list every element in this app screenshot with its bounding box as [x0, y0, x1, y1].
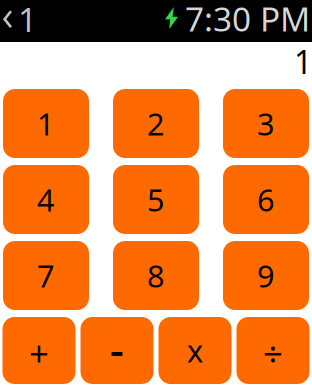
button[interactable]: 7 — [3, 241, 89, 310]
button[interactable]: 6 — [223, 165, 309, 234]
button[interactable]: 8 — [113, 241, 199, 310]
button[interactable]: Minus — [80, 317, 153, 384]
staticText: 9 — [257, 255, 275, 296]
staticText: 1 — [18, 0, 37, 41]
button[interactable]: 3 — [223, 89, 309, 158]
button[interactable]: 2 — [113, 89, 199, 158]
staticText: 1 — [294, 40, 312, 83]
staticText: 5 — [147, 179, 165, 220]
staticText: 3 — [257, 103, 275, 144]
staticText: 7 — [37, 255, 55, 296]
staticText: 1 — [37, 103, 55, 144]
button[interactable]: Multiply — [158, 317, 231, 384]
button[interactable]: 4 — [3, 165, 89, 234]
button[interactable]: Divide — [236, 317, 309, 384]
button[interactable]: 9 — [223, 241, 309, 310]
staticText: + — [29, 330, 49, 376]
button[interactable]: 5 — [113, 165, 199, 234]
staticText: 6 — [257, 179, 275, 220]
staticText: x — [187, 330, 203, 371]
button[interactable]: Back — [0, 0, 47, 42]
staticText: 4 — [37, 179, 55, 220]
staticText: 2 — [147, 103, 165, 144]
staticText: ÷ — [263, 330, 283, 376]
staticText: 8 — [147, 255, 165, 296]
button[interactable]: 1 — [3, 89, 89, 158]
button[interactable]: Plus — [2, 317, 75, 384]
staticText: 7:30 PM — [185, 0, 310, 41]
